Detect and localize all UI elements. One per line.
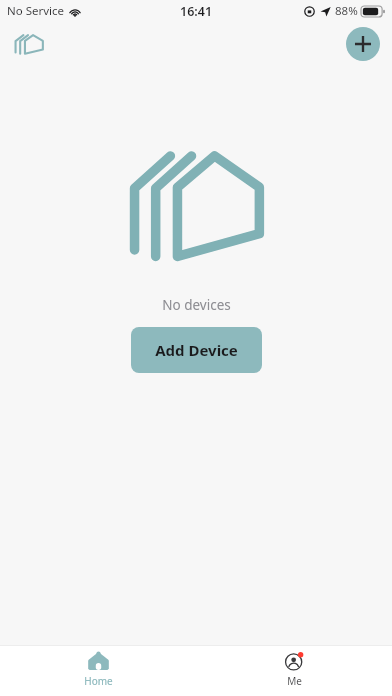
staticText: No Service [7, 3, 65, 19]
button[interactable]: Home tab [59, 646, 137, 696]
button[interactable]: Add Device [131, 327, 262, 373]
staticText: No devices [162, 296, 231, 314]
staticText: 88% [335, 3, 358, 19]
staticText: Home [84, 674, 113, 688]
button[interactable]: Add device [346, 27, 380, 61]
button[interactable]: Me tab [255, 646, 333, 696]
button[interactable]: Home brand [12, 31, 46, 57]
staticText: 16:41 [180, 3, 213, 20]
staticText: Add Device [155, 340, 238, 360]
staticText: Me [287, 674, 302, 688]
